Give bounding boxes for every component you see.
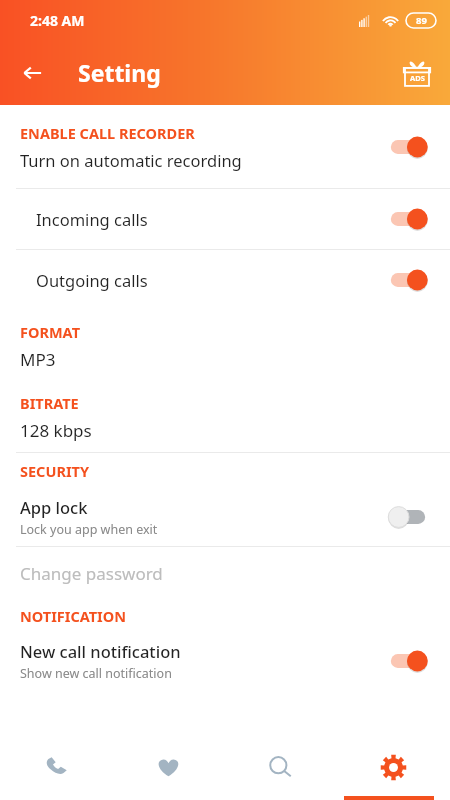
button[interactable]: ENABLE CALL RECORDER <box>0 105 450 188</box>
button[interactable]: FORMAT <box>0 310 450 381</box>
button[interactable]: Settings <box>337 738 450 800</box>
button[interactable]: Switch off <box>386 504 430 530</box>
button[interactable]: New call notification <box>0 633 450 689</box>
button[interactable]: Switch on <box>386 134 430 160</box>
button[interactable]: Ads gift <box>394 50 440 96</box>
staticText: ADS <box>410 73 425 83</box>
staticText: Incoming calls <box>36 208 386 230</box>
staticText: SECURITY <box>20 461 89 481</box>
button[interactable]: Switch on <box>386 648 430 674</box>
staticText: NOTIFICATION <box>20 606 127 626</box>
staticText: Outgoing calls <box>36 269 386 291</box>
staticText: BITRATE <box>20 393 79 413</box>
staticText: App lock <box>20 496 88 518</box>
staticText: MP3 <box>20 348 56 371</box>
button[interactable]: Switch on <box>386 206 430 232</box>
staticText: 2:48 AM <box>30 11 85 30</box>
staticText: 128 kbps <box>20 419 92 442</box>
button[interactable]: Switch on <box>386 267 430 293</box>
staticText: Lock you app when exit <box>20 521 158 538</box>
staticText: Show new call notification <box>20 665 172 682</box>
button[interactable]: App lock <box>0 488 450 546</box>
button[interactable]: Back <box>8 49 56 97</box>
staticText: Turn on automatic recording <box>20 149 242 171</box>
staticText: Change password <box>20 562 163 585</box>
staticText: Setting <box>78 57 161 88</box>
staticText: FORMAT <box>20 322 81 342</box>
button[interactable]: BITRATE <box>0 381 450 452</box>
button[interactable]: Incoming calls <box>0 189 450 249</box>
button[interactable]: Change password <box>0 547 450 599</box>
button[interactable]: Calls <box>0 738 112 800</box>
staticText: New call notification <box>20 640 181 662</box>
staticText: ENABLE CALL RECORDER <box>20 123 195 143</box>
button[interactable]: Search <box>224 738 337 800</box>
button[interactable]: Favorites <box>112 738 224 800</box>
staticText: 89 <box>416 14 427 27</box>
button[interactable]: Outgoing calls <box>0 250 450 310</box>
